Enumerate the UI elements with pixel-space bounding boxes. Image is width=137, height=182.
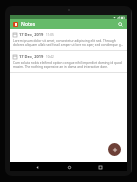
button[interactable]: Back [33, 163, 41, 171]
staticText: 17 Dec, 2019 [19, 54, 44, 59]
staticText: 17 Dec, 2019 [19, 32, 44, 37]
button[interactable]: 17 Dec, 2019 [10, 51, 127, 72]
button[interactable]: 17 Dec, 2019 [10, 29, 127, 50]
staticText: Notes [21, 21, 36, 28]
staticText: Cum soluta nobis eleifend option congue … [13, 61, 124, 69]
button[interactable]: Home [65, 163, 73, 171]
staticText: Lorem ipsum dolor sit amet, consectetur … [13, 39, 124, 47]
staticText: 10:42 [46, 55, 54, 59]
button[interactable]: Search [117, 21, 124, 28]
button[interactable]: App icon [13, 22, 18, 27]
button[interactable]: Recent apps [96, 163, 104, 171]
button[interactable]: New note [108, 143, 121, 156]
staticText: 11:05 [46, 33, 54, 37]
